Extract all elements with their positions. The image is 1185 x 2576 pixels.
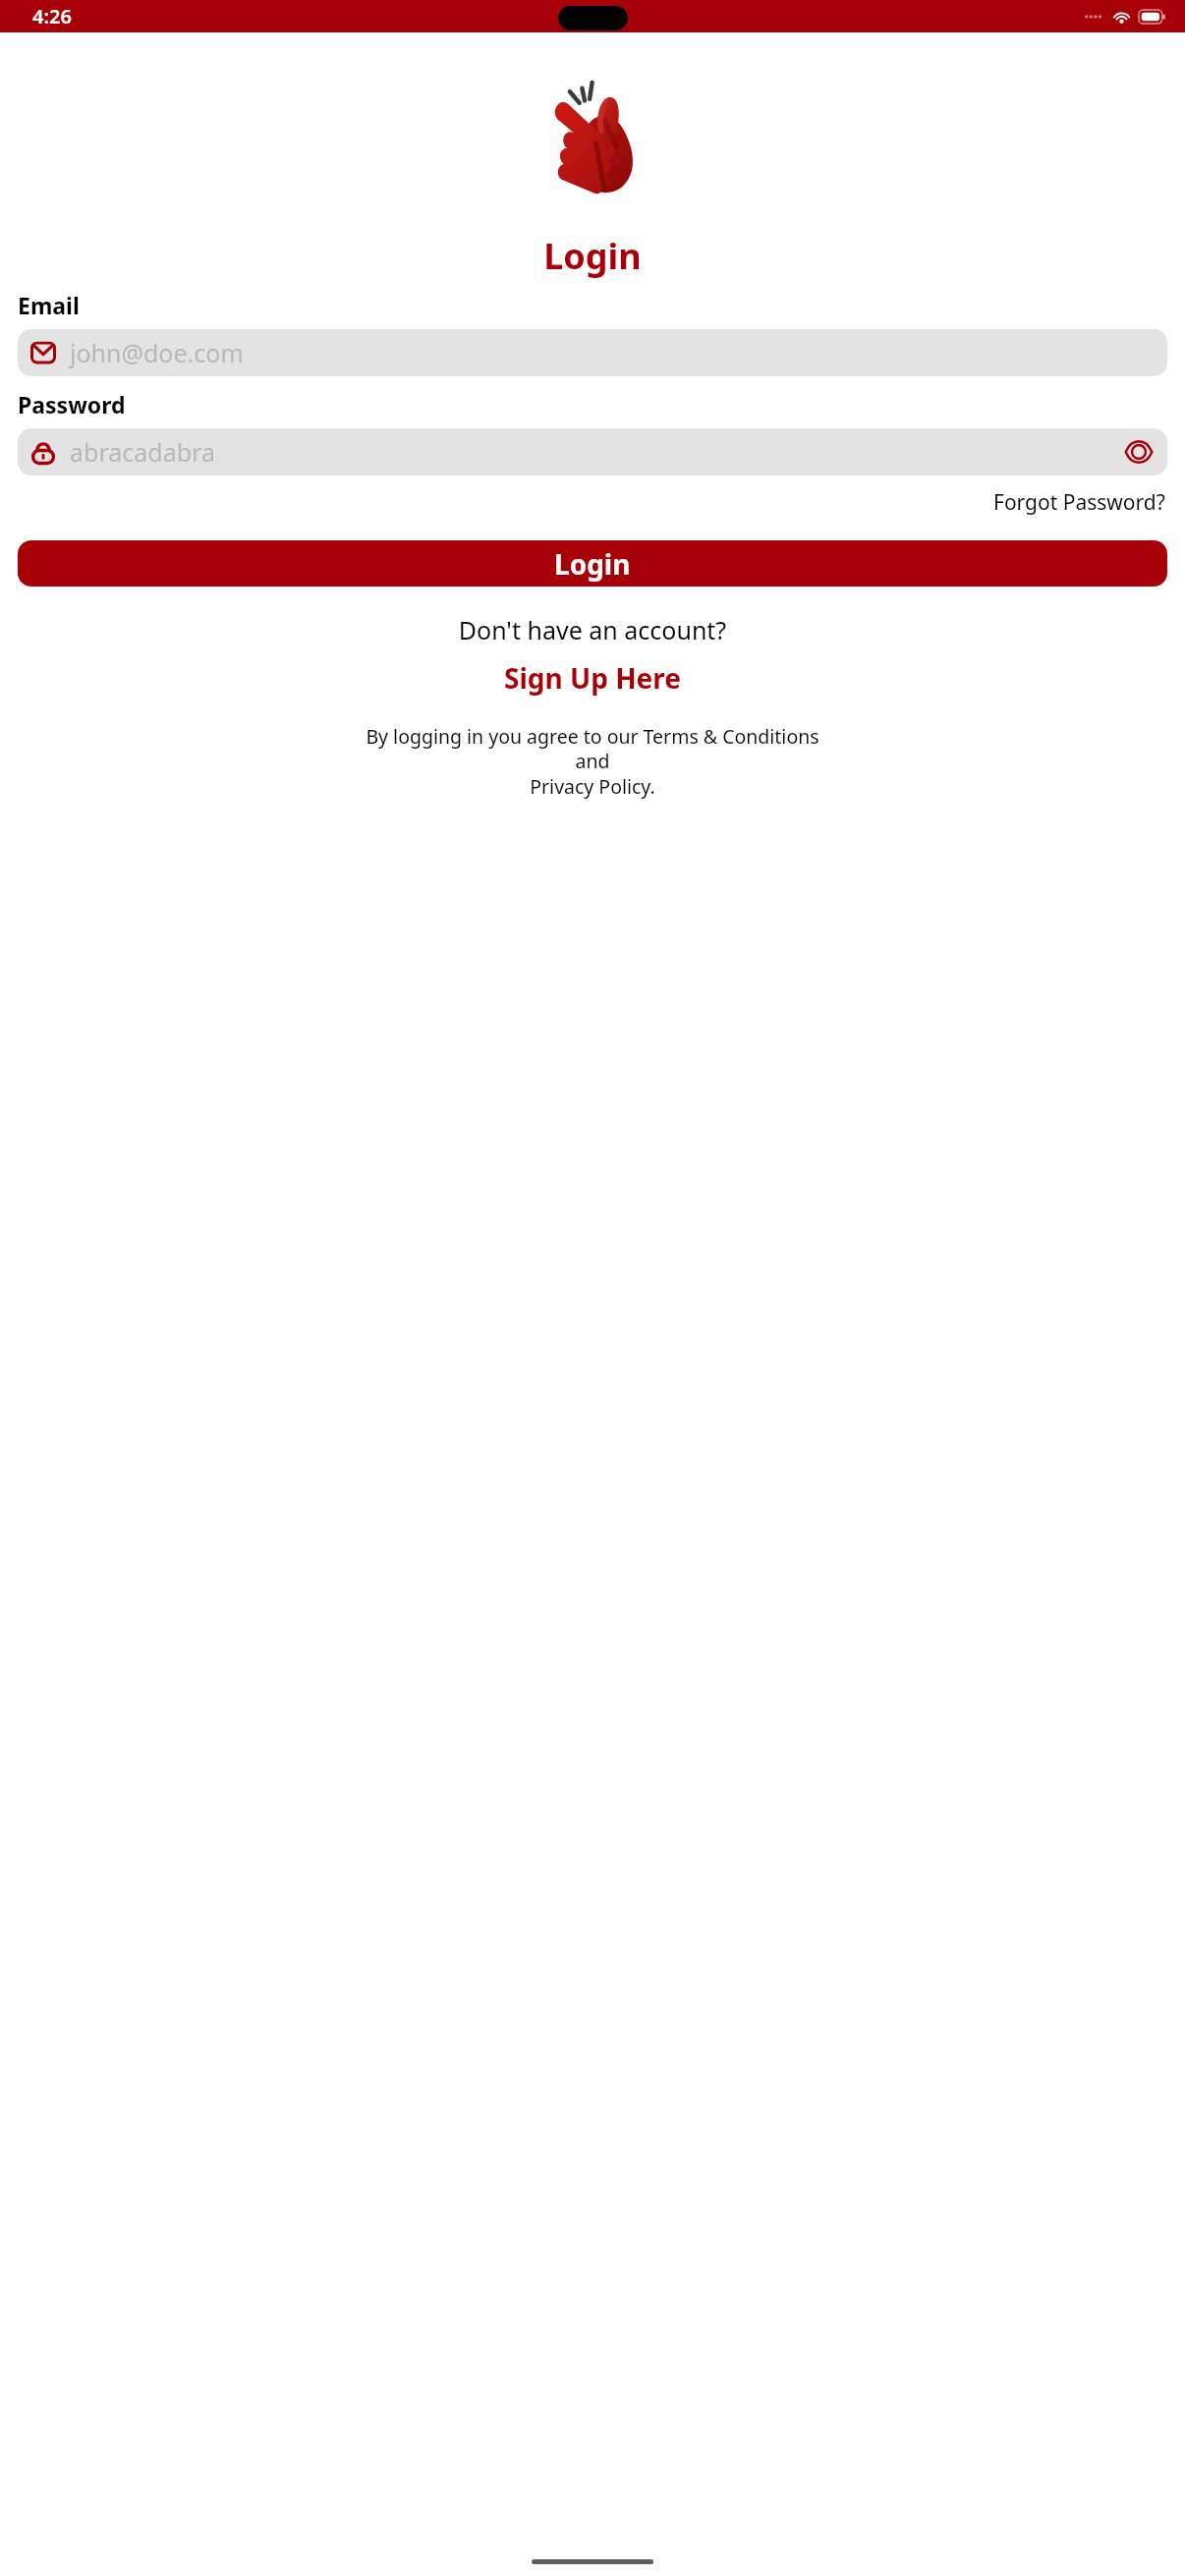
button[interactable]: Forgot Password? xyxy=(991,486,1167,519)
button[interactable]: abracadabra xyxy=(18,428,1167,476)
staticText: Password xyxy=(18,389,126,420)
button[interactable]: Login xyxy=(18,540,1167,587)
button[interactable]: john@doe.com xyxy=(18,329,1167,376)
staticText: 4:26 xyxy=(32,3,72,29)
staticText: abracadabra xyxy=(70,435,1123,469)
staticText: Don't have an account? xyxy=(0,613,1185,646)
staticText: john@doe.com xyxy=(70,336,1155,369)
button[interactable]: Show password xyxy=(1123,436,1155,468)
staticText: By logging in you agree to our Terms & C… xyxy=(18,723,1167,800)
staticText: Login xyxy=(0,232,1185,280)
staticText: Login xyxy=(554,545,631,583)
button[interactable]: Sign Up Here xyxy=(498,656,687,700)
staticText: Email xyxy=(18,290,80,320)
